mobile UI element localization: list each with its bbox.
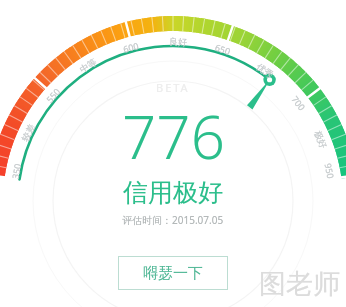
- staticText: 650: [213, 41, 232, 57]
- staticText: 600: [122, 39, 140, 55]
- staticText: 信用极好: [123, 177, 223, 208]
- staticText: 优秀: [254, 61, 275, 80]
- staticText: 中等: [77, 56, 99, 75]
- staticText: 700: [289, 93, 309, 113]
- staticText: 776: [122, 95, 225, 177]
- staticText: BETA: [156, 80, 190, 95]
- staticText: 评估时间：2015.07.05: [122, 213, 224, 227]
- staticText: 嘚瑟一下: [143, 264, 203, 283]
- button[interactable]: 嘚瑟一下: [118, 256, 228, 290]
- staticText: 图老师: [259, 267, 340, 301]
- staticText: 良好: [169, 36, 187, 47]
- staticText: 极好: [312, 129, 329, 150]
- staticText: 950: [323, 162, 337, 180]
- staticText: 550: [43, 85, 63, 105]
- staticText: 350: [9, 162, 23, 180]
- staticText: 较差: [19, 122, 37, 143]
